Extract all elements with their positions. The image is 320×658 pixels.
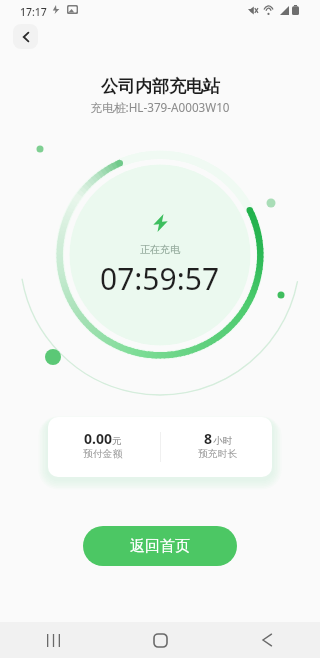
staticText: 返回首页 — [130, 537, 190, 556]
button[interactable]: Back — [13, 24, 38, 49]
staticText: 元 — [112, 435, 122, 447]
button[interactable]: Back — [250, 623, 284, 657]
button[interactable]: 返回首页 — [83, 526, 237, 566]
staticText: 小时 — [213, 435, 232, 447]
staticText: 充电桩:HL-379-A0003W10 — [90, 99, 230, 115]
button[interactable]: Home — [143, 623, 177, 657]
button[interactable]: Recents — [36, 623, 70, 657]
staticText: 公司内部充电站 — [101, 76, 220, 97]
staticText: 8 — [204, 429, 213, 448]
staticText: 0.00 — [84, 429, 112, 448]
staticText: 预充时长 — [198, 448, 238, 460]
staticText: 正在充电 — [140, 243, 180, 256]
staticText: 07:59:57 — [100, 258, 220, 299]
staticText: 预付金额 — [83, 448, 123, 460]
staticText: 17:17 — [20, 5, 47, 19]
